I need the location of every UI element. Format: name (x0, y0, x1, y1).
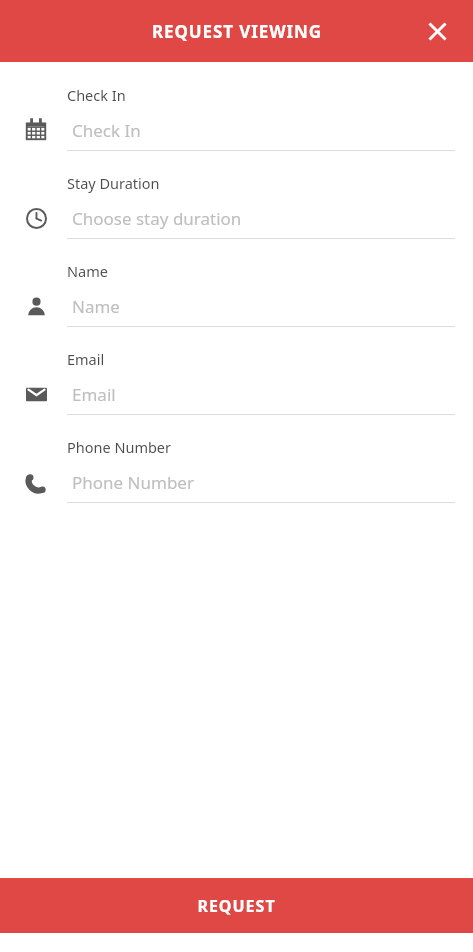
staticText: Stay Duration (67, 173, 160, 193)
staticText: Check In (72, 119, 141, 142)
staticText: REQUEST (197, 895, 276, 917)
staticText: Name (72, 295, 120, 318)
staticText: REQUEST VIEWING (152, 20, 322, 43)
staticText: Check In (67, 85, 126, 105)
staticText: Phone Number (67, 437, 172, 457)
staticText: Phone Number (72, 471, 194, 494)
staticText: Name (67, 261, 108, 281)
staticText: Choose stay duration (72, 207, 242, 230)
button[interactable]: Stay Duration (0, 168, 473, 256)
button[interactable]: Close (415, 9, 459, 53)
staticText: Email (67, 349, 105, 369)
button[interactable]: Phone Number (0, 432, 473, 520)
button[interactable]: Check In (0, 80, 473, 168)
button[interactable]: Name (0, 256, 473, 344)
button[interactable]: Email (0, 344, 473, 432)
staticText: Email (72, 383, 116, 406)
button[interactable]: REQUEST (0, 878, 473, 933)
